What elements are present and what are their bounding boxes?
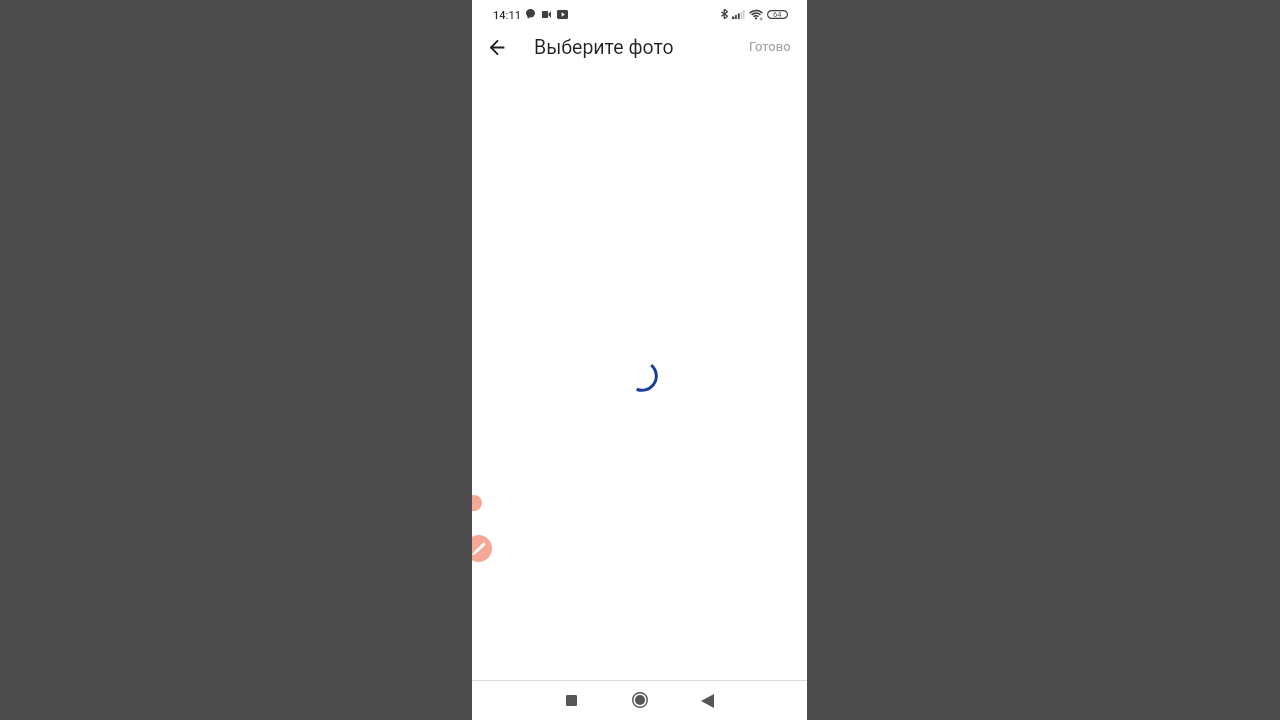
button[interactable]: Recent apps [553, 682, 589, 718]
button[interactable]: Home [622, 682, 658, 718]
button[interactable]: Готово [740, 33, 800, 60]
staticText: 14:11 [493, 9, 521, 22]
button[interactable]: Photo marker [472, 495, 482, 511]
staticText: 64 [773, 10, 782, 19]
button[interactable]: Back [481, 31, 513, 63]
staticText: Выберите фото [534, 36, 674, 59]
button[interactable]: Edit [472, 535, 492, 562]
button[interactable]: Back [689, 683, 725, 719]
staticText: Готово [749, 39, 791, 54]
